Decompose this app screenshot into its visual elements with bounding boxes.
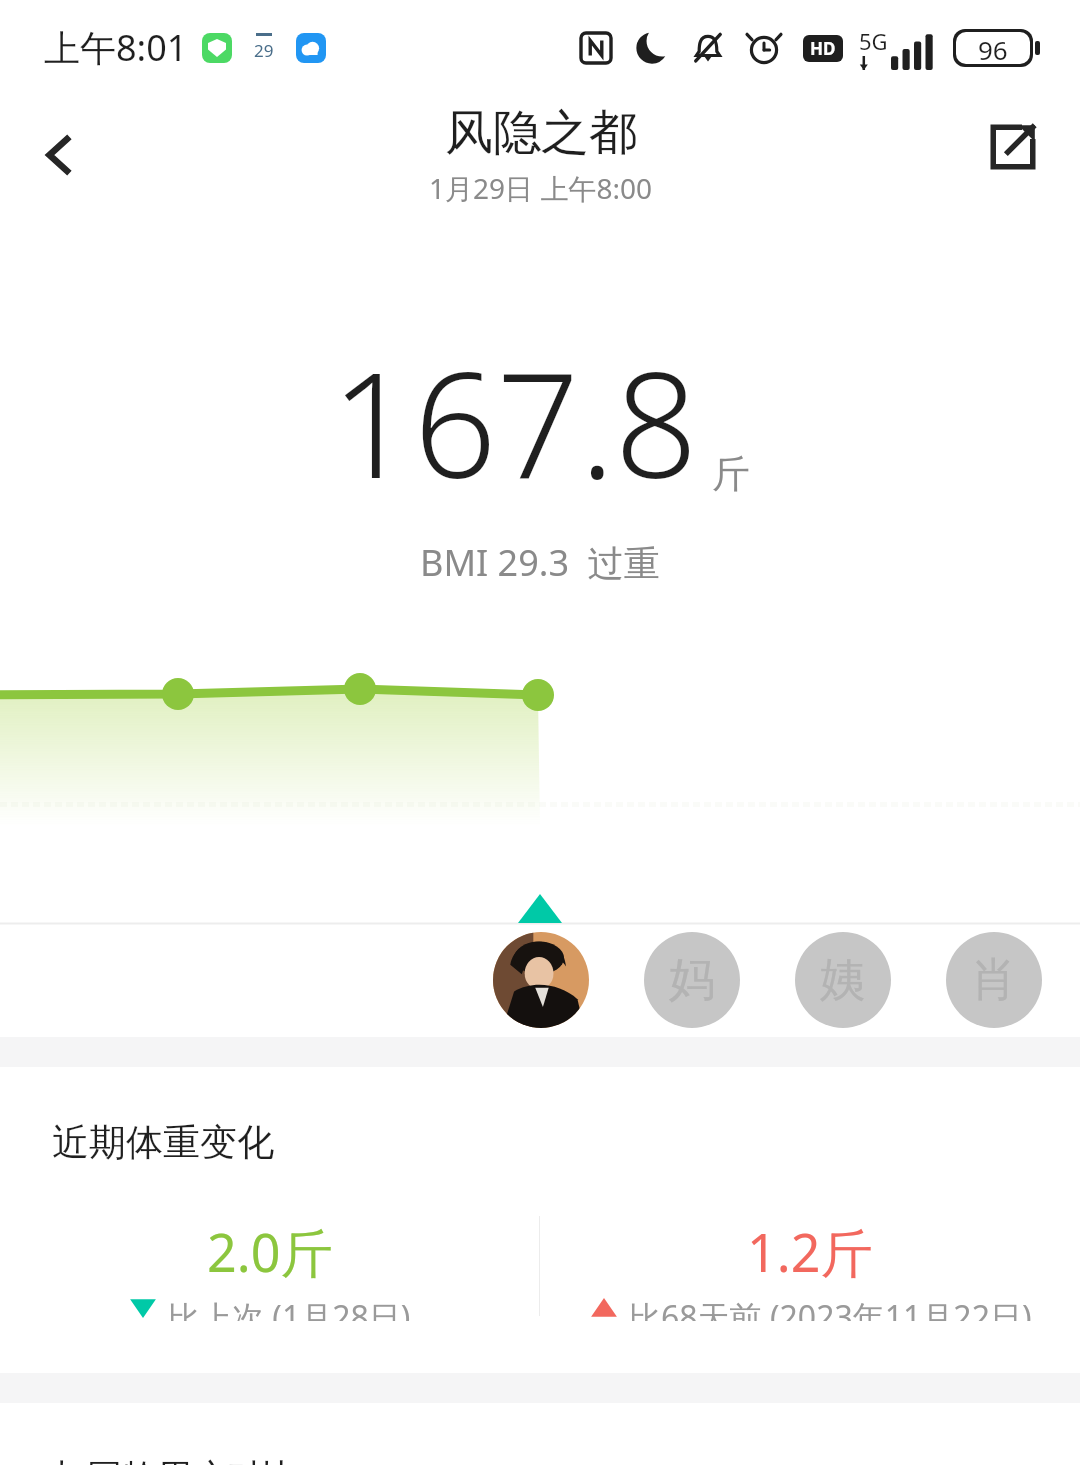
staticText: 167.8	[331, 323, 698, 520]
staticText: 1月29日 上午8:00	[429, 169, 652, 207]
staticText: 1.2斤	[747, 1216, 873, 1287]
staticText: 29	[254, 39, 274, 62]
staticText: 比68天前 (2023年11月22日)	[629, 1295, 1032, 1321]
staticText: 肖	[971, 951, 1017, 1009]
staticText: BMI 29.3 过重	[420, 538, 660, 587]
button[interactable]: 姨	[795, 932, 891, 1028]
staticText: 近期体重变化	[52, 1119, 274, 1166]
staticText: 上午8:01	[44, 23, 188, 72]
staticText: HD	[810, 37, 836, 60]
button[interactable]: 返回	[16, 112, 102, 198]
staticText: 比上次 (1月28日)	[168, 1295, 411, 1321]
button[interactable]: 肖	[946, 932, 1042, 1028]
staticText: 姨	[820, 951, 866, 1009]
staticText: 96	[978, 32, 1008, 64]
staticText: 妈	[669, 951, 715, 1009]
staticText: 5G	[859, 26, 888, 56]
button[interactable]: 分享	[970, 104, 1056, 190]
button[interactable]: 2.0斤	[0, 1216, 539, 1321]
staticText: 斤	[712, 450, 750, 498]
staticText: 与同龄用户对比	[52, 1455, 297, 1465]
staticText: 风隐之都	[445, 103, 637, 163]
button[interactable]: 妈	[644, 932, 740, 1028]
button[interactable]: 1.2斤	[540, 1216, 1080, 1321]
staticText: 2.0斤	[207, 1216, 333, 1287]
button[interactable]: 当前用户头像	[493, 932, 589, 1028]
